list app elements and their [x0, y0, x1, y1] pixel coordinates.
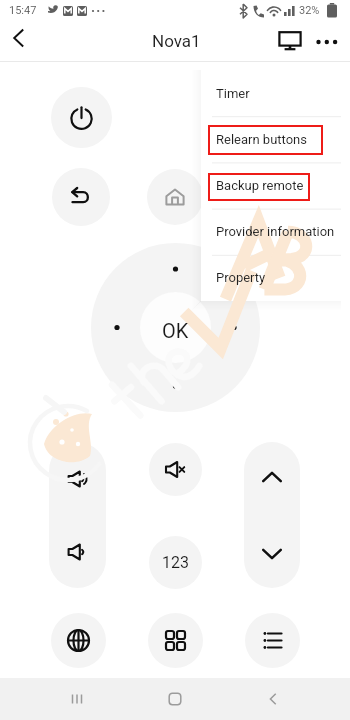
staticText: OK — [162, 319, 189, 342]
button[interactable]: Home — [147, 169, 203, 225]
button[interactable]: Navigate up — [0, 18, 40, 58]
staticText: Provider information — [216, 224, 335, 239]
button[interactable]: Property — [201, 254, 341, 300]
button[interactable]: Web browser — [51, 613, 106, 668]
button[interactable]: Mute — [149, 443, 202, 496]
staticText: Property — [216, 270, 266, 285]
staticText: Nova1 — [152, 31, 201, 51]
staticText: 15:47 — [9, 4, 37, 17]
staticText: 123 — [162, 553, 189, 572]
button[interactable]: 123 — [149, 536, 202, 589]
button[interactable]: Volume down — [49, 515, 106, 588]
button[interactable]: Channel up — [244, 442, 300, 515]
button[interactable]: More options — [306, 21, 347, 62]
button[interactable]: Volume up — [49, 442, 106, 515]
staticText: Backup remote — [216, 178, 304, 193]
button[interactable]: Menu list — [245, 613, 300, 668]
button[interactable]: Relearn buttons — [201, 116, 341, 162]
button[interactable]: Power — [51, 87, 112, 148]
staticText: 32% — [299, 4, 320, 17]
button[interactable]: Back — [52, 168, 110, 226]
button[interactable]: Apps — [148, 613, 203, 668]
staticText: Relearn buttons — [216, 132, 307, 147]
button[interactable]: Home — [154, 678, 196, 720]
button[interactable]: Timer — [201, 70, 341, 116]
button[interactable]: Backup remote — [201, 162, 341, 208]
button[interactable]: Recent apps — [56, 678, 98, 720]
button[interactable]: Channel down — [244, 515, 300, 588]
button[interactable]: Provider information — [201, 208, 341, 254]
button[interactable]: OK — [140, 292, 211, 363]
staticText: Timer — [216, 86, 250, 101]
button[interactable]: Back — [252, 678, 294, 720]
button[interactable]: Connect to TV — [269, 21, 310, 62]
